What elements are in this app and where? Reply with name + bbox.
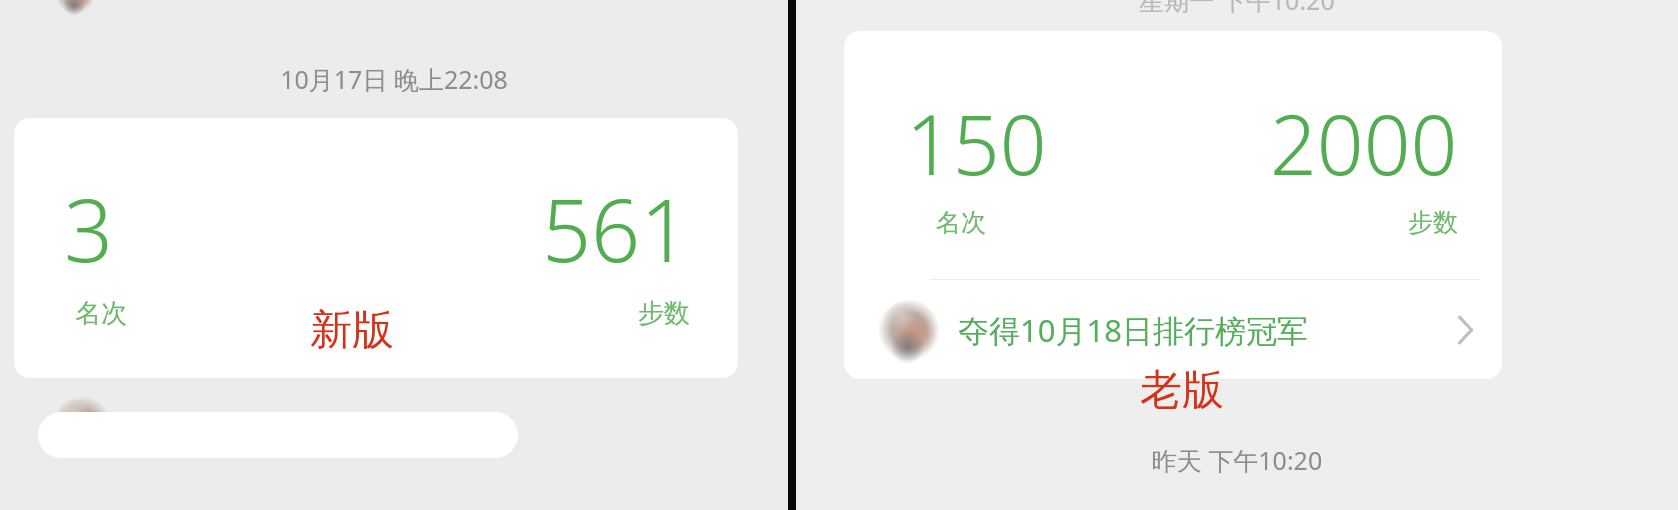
staticText: 夺得10月18日排行榜冠军 — [958, 309, 1308, 351]
button[interactable]: 3 — [14, 118, 738, 378]
other: 查看排行榜 — [1454, 311, 1476, 349]
staticText: 步数 — [638, 297, 690, 330]
staticText: 新版 — [310, 304, 394, 357]
staticText: 老版 — [1140, 364, 1224, 417]
button[interactable]: 150 — [844, 31, 1502, 379]
staticText: 561 — [542, 170, 690, 287]
staticText: 150 — [906, 87, 1047, 199]
staticText: 昨天 下午10:20 — [796, 443, 1678, 477]
button[interactable]: 夺得10月18日排行榜冠军 — [844, 281, 1502, 379]
staticText: 10月17日 晚上22:08 — [0, 62, 788, 96]
staticText: 名次 — [936, 207, 986, 238]
staticText: 星期一 下午10:20 — [796, 0, 1678, 17]
staticText: 2000 — [1270, 87, 1458, 199]
staticText: 3 — [64, 170, 114, 287]
staticText: 名次 — [75, 297, 127, 330]
staticText: 步数 — [1408, 207, 1458, 238]
